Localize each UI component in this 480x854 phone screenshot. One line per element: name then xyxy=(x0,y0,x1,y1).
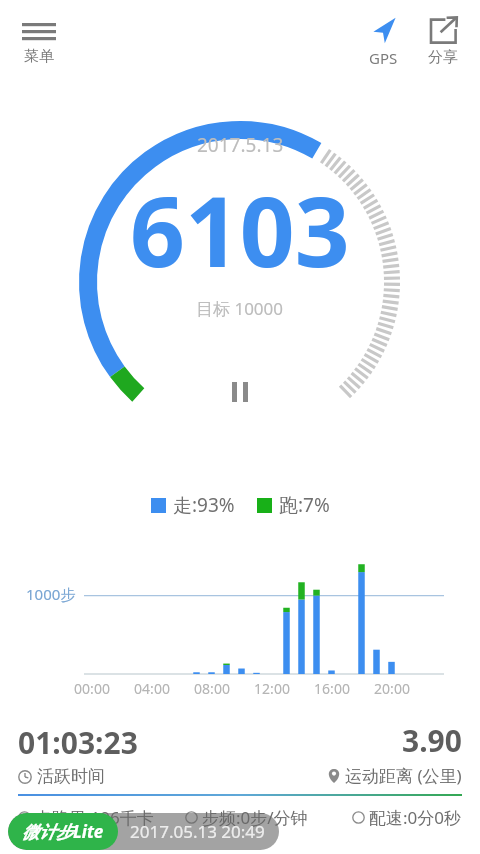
staticText: 2017.5.13 xyxy=(197,132,284,158)
button[interactable]: 暂停 xyxy=(224,374,256,410)
staticText: 20:00 xyxy=(367,679,417,698)
staticText: 分享 xyxy=(428,48,458,67)
staticText: 菜单 xyxy=(24,47,54,66)
staticText: 微计步Lite xyxy=(22,820,104,843)
staticText: 配速:0分0秒 xyxy=(369,806,462,829)
staticText: 目标 10000 xyxy=(196,297,284,320)
staticText: 16:00 xyxy=(307,679,357,698)
staticText: 12:00 xyxy=(247,679,297,698)
staticText: 活跃时间 xyxy=(37,766,105,787)
staticText: 走:93% xyxy=(173,492,235,518)
staticText: 2017.05.13 20:49 xyxy=(130,820,265,843)
staticText: 步频:0步/分钟 xyxy=(202,806,308,829)
staticText: GPS xyxy=(369,48,398,68)
staticText: 6103 xyxy=(130,164,350,295)
staticText: 01:03:23 xyxy=(18,722,138,763)
staticText: 00:00 xyxy=(67,679,117,698)
staticText: 运动距离 (公里) xyxy=(345,764,462,787)
button[interactable]: GPS xyxy=(360,14,406,70)
staticText: 跑:7% xyxy=(279,492,330,518)
button[interactable]: 菜单 xyxy=(16,18,62,68)
staticText: 1000步 xyxy=(26,584,76,604)
staticText: 04:00 xyxy=(127,679,177,698)
staticText: 卡路里:196千卡 xyxy=(35,806,154,829)
button[interactable]: 分享 xyxy=(420,14,466,69)
staticText: 08:00 xyxy=(187,679,237,698)
staticText: 3.90 xyxy=(402,720,462,761)
